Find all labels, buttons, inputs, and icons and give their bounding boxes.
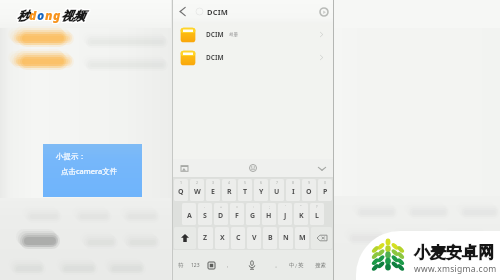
staticText: 小麦安卓网	[414, 243, 494, 263]
staticText: J	[284, 211, 287, 221]
button[interactable]: -	[198, 203, 212, 225]
button[interactable]: '	[278, 203, 292, 225]
staticText: 秒	[17, 7, 29, 22]
button[interactable]: 8	[286, 179, 300, 201]
staticText: T	[243, 187, 248, 197]
staticText: 2	[196, 180, 199, 185]
button[interactable]: A	[182, 203, 196, 225]
staticText: X	[220, 233, 225, 243]
staticText: d	[29, 7, 37, 23]
button[interactable]: 搜索	[308, 250, 333, 280]
button[interactable]: Back	[176, 0, 189, 23]
staticText: M	[299, 233, 306, 243]
button[interactable]: ;	[262, 203, 276, 225]
button[interactable]: B	[263, 227, 277, 249]
button[interactable]: 3	[206, 179, 220, 201]
staticText: 频	[74, 7, 86, 22]
staticText: 视	[61, 7, 73, 22]
staticText: n	[44, 6, 52, 22]
staticText: 点击camera文件	[61, 166, 118, 176]
staticText: n	[45, 8, 53, 24]
staticText: 视	[62, 7, 74, 22]
staticText: 英	[298, 262, 304, 269]
button[interactable]: :	[246, 203, 260, 225]
staticText: 7	[276, 180, 279, 185]
staticText: o	[37, 8, 45, 24]
button[interactable]: =	[230, 203, 244, 225]
staticText: W	[194, 187, 201, 197]
staticText: V	[252, 233, 257, 243]
button[interactable]: M	[295, 227, 309, 249]
staticText: d	[28, 8, 36, 24]
button[interactable]: C	[231, 227, 245, 249]
staticText: DCIM	[206, 53, 224, 62]
staticText: 秒	[16, 9, 28, 24]
staticText: 视	[60, 8, 72, 23]
staticText: g	[53, 8, 61, 24]
button[interactable]: Emoji	[246, 161, 260, 175]
staticText: 相册	[229, 32, 238, 38]
staticText: 秒	[18, 7, 30, 22]
staticText: o	[38, 7, 46, 23]
staticText: n	[46, 7, 54, 23]
staticText: N	[283, 233, 289, 243]
button[interactable]: N	[279, 227, 293, 249]
button[interactable]: 中	[285, 250, 308, 280]
staticText: D	[218, 211, 224, 221]
staticText: 中	[289, 262, 295, 269]
staticText: 秒	[16, 7, 28, 22]
staticText: '	[285, 204, 286, 209]
button[interactable]: ?	[310, 203, 324, 225]
button[interactable]: Stickers	[177, 161, 191, 175]
staticText: ?	[316, 204, 318, 209]
staticText: 6	[260, 180, 263, 185]
button[interactable]: 123	[188, 250, 203, 280]
staticText: DCIM	[206, 30, 224, 39]
staticText: O	[306, 187, 312, 197]
button[interactable]: X	[215, 227, 229, 249]
staticText: 8	[292, 180, 295, 185]
button[interactable]: 6	[254, 179, 268, 201]
button[interactable]: 符	[173, 250, 188, 280]
button[interactable]: Clear	[315, 0, 333, 23]
button[interactable]: DCIM	[173, 23, 333, 46]
staticText: www.xmsigma.com	[414, 263, 497, 275]
staticText: 秒	[17, 8, 29, 23]
button[interactable]: 小提示：	[43, 144, 142, 197]
button[interactable]: +	[214, 203, 228, 225]
button[interactable]: Shift	[174, 227, 196, 249]
button[interactable]: V	[247, 227, 261, 249]
button[interactable]: Hide keyboard	[315, 161, 329, 175]
staticText: g	[54, 6, 62, 22]
staticText: d	[29, 8, 37, 24]
staticText: 频	[73, 7, 85, 22]
staticText: 搜索	[315, 262, 326, 269]
button[interactable]: 0	[318, 179, 332, 201]
button[interactable]: 9	[302, 179, 316, 201]
button[interactable]: Z	[198, 227, 213, 249]
button[interactable]: 7	[270, 179, 284, 201]
button[interactable]: Voice input	[235, 250, 269, 280]
button[interactable]: 1	[174, 179, 188, 201]
staticText: DCIM	[207, 7, 229, 17]
staticText: G	[250, 211, 256, 221]
staticText: n	[45, 7, 53, 23]
staticText: o	[36, 7, 44, 23]
button[interactable]: Backspace	[311, 227, 332, 249]
staticText: 4	[228, 180, 231, 185]
button[interactable]: DCIM	[173, 46, 333, 69]
staticText: S	[203, 211, 207, 221]
staticText: o	[36, 8, 44, 24]
button[interactable]: 4	[222, 179, 236, 201]
staticText: o	[37, 7, 45, 23]
staticText: 视	[60, 9, 72, 24]
staticText: L	[315, 211, 319, 221]
button[interactable]: 5	[238, 179, 252, 201]
button[interactable]: 2	[190, 179, 204, 201]
button[interactable]: Keyboard layout	[203, 250, 219, 280]
staticText: d	[28, 7, 36, 23]
button[interactable]: "	[294, 203, 308, 225]
staticText: +	[220, 204, 223, 209]
